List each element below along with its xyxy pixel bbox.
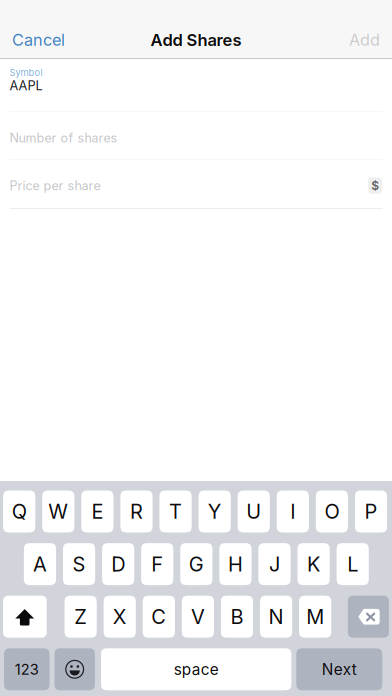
button[interactable]: R	[120, 490, 153, 532]
button[interactable]: Add	[0, 0, 392, 59]
button[interactable]: C	[143, 596, 175, 638]
button[interactable]: Emoji keyboard	[54, 648, 95, 690]
staticText: 123	[15, 660, 39, 678]
button[interactable]: L	[337, 543, 369, 585]
button[interactable]: B	[221, 596, 253, 638]
button[interactable]: K	[297, 543, 330, 585]
button[interactable]: Price per share	[0, 160, 392, 208]
button[interactable]: G	[180, 543, 212, 585]
button[interactable]: W	[42, 490, 74, 532]
button[interactable]: M	[299, 596, 331, 638]
button[interactable]: 123	[4, 648, 50, 690]
staticText: H	[228, 552, 243, 576]
button[interactable]: I	[277, 490, 309, 532]
button[interactable]: A	[24, 543, 56, 585]
staticText: Q	[12, 499, 27, 524]
button[interactable]: Cancel	[0, 0, 88, 59]
staticText: AAPL	[10, 78, 43, 93]
button[interactable]: U	[238, 490, 270, 532]
button[interactable]: Shift	[3, 596, 47, 638]
button[interactable]: Z	[64, 596, 97, 638]
button[interactable]: Delete	[348, 596, 389, 638]
button[interactable]: O	[316, 490, 348, 532]
staticText: Cancel	[12, 30, 65, 50]
staticText: E	[91, 499, 103, 524]
button[interactable]: Symbol	[0, 59, 392, 111]
staticText: U	[246, 499, 261, 524]
staticText: R	[130, 499, 143, 524]
button[interactable]: Y	[199, 490, 231, 532]
staticText: V	[191, 605, 205, 629]
button[interactable]: Next	[296, 648, 382, 690]
staticText: Add Shares	[150, 30, 241, 50]
staticText: L	[347, 552, 358, 576]
button[interactable]: space	[101, 648, 291, 690]
staticText: Z	[74, 605, 87, 629]
button[interactable]: V	[182, 596, 214, 638]
staticText: S	[73, 552, 86, 576]
button[interactable]: Number of shares	[0, 112, 392, 160]
staticText: N	[269, 605, 284, 629]
staticText: F	[151, 552, 163, 576]
staticText: O	[324, 499, 339, 524]
staticText: P	[364, 499, 377, 524]
staticText: A	[33, 552, 47, 576]
staticText: space	[174, 660, 219, 679]
button[interactable]: X	[104, 596, 136, 638]
staticText: K	[307, 552, 320, 576]
button[interactable]: E	[81, 490, 113, 532]
staticText: Price per share	[10, 178, 101, 193]
button[interactable]: F	[141, 543, 173, 585]
button[interactable]: T	[159, 490, 192, 532]
button[interactable]: H	[219, 543, 251, 585]
staticText: C	[151, 605, 166, 629]
staticText: $	[371, 178, 379, 193]
staticText: M	[306, 605, 324, 629]
staticText: Add	[349, 30, 380, 50]
button[interactable]: N	[260, 596, 292, 638]
staticText: Number of shares	[10, 130, 118, 146]
staticText: G	[189, 552, 204, 576]
button[interactable]: J	[258, 543, 291, 585]
staticText: Y	[208, 499, 222, 524]
button[interactable]: S	[63, 543, 95, 585]
button[interactable]: P	[355, 490, 387, 532]
staticText: I	[290, 499, 295, 524]
staticText: Symbol	[10, 67, 43, 78]
staticText: X	[113, 605, 127, 629]
staticText: B	[230, 605, 243, 629]
button[interactable]: D	[102, 543, 134, 585]
staticText: D	[111, 552, 125, 576]
staticText: T	[169, 499, 182, 524]
staticText: W	[48, 499, 68, 524]
button[interactable]: Q	[3, 490, 35, 532]
staticText: Next	[322, 660, 357, 679]
staticText: J	[269, 552, 280, 576]
